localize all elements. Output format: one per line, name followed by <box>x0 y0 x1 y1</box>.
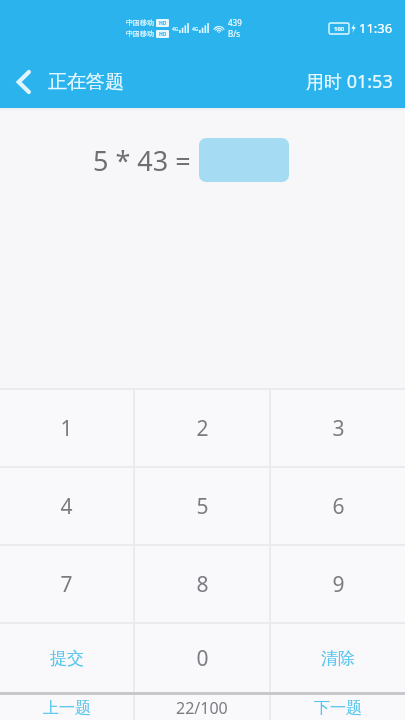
button[interactable]: 0 <box>135 624 269 692</box>
staticText: 4G <box>172 26 179 33</box>
button[interactable]: 4 <box>0 468 133 544</box>
staticText: 1 <box>60 414 73 443</box>
button[interactable]: 9 <box>271 546 405 622</box>
staticText: 439 <box>228 17 242 28</box>
staticText: 22/100 <box>176 697 228 719</box>
staticText: 7 <box>60 570 73 599</box>
staticText: 上一题 <box>43 698 91 718</box>
button[interactable]: 6 <box>271 468 405 544</box>
staticText: 5 <box>196 492 209 521</box>
staticText: 0 <box>196 644 209 673</box>
staticText: HD <box>159 20 167 27</box>
staticText: 中国移动 <box>126 29 154 38</box>
button[interactable]: 5 <box>135 468 269 544</box>
staticText: HD <box>159 31 167 38</box>
button[interactable]: 7 <box>0 546 133 622</box>
staticText: 5 * 43 = <box>93 142 191 179</box>
staticText: 100 <box>334 25 345 33</box>
button[interactable]: 清除 <box>271 624 405 692</box>
staticText: 4G <box>192 26 199 33</box>
button[interactable]: 提交 <box>0 624 133 692</box>
staticText: 正在答题 <box>48 70 124 94</box>
staticText: 8 <box>196 570 209 599</box>
staticText: 清除 <box>321 648 355 669</box>
staticText: 3 <box>332 414 345 443</box>
staticText: B/s <box>228 28 241 39</box>
staticText: 下一题 <box>314 698 362 718</box>
staticText: 9 <box>332 570 345 599</box>
staticText: 6 <box>332 492 345 521</box>
button[interactable]: 22/100 <box>135 695 269 720</box>
staticText: 2 <box>196 414 209 443</box>
staticText: 中国移动 <box>126 18 154 27</box>
button[interactable]: 下一题 <box>271 695 405 720</box>
button[interactable]: 上一题 <box>0 695 133 720</box>
staticText: 4 <box>60 492 73 521</box>
button[interactable]: 1 <box>0 390 133 466</box>
button[interactable]: 3 <box>271 390 405 466</box>
staticText: 用时 01:53 <box>306 69 393 94</box>
button[interactable]: 答案输入框 <box>199 138 289 182</box>
staticText: 11:36 <box>359 19 393 37</box>
button[interactable]: 返回 <box>0 55 48 108</box>
staticText: 提交 <box>50 648 84 669</box>
button[interactable]: 2 <box>135 390 269 466</box>
button[interactable]: 8 <box>135 546 269 622</box>
